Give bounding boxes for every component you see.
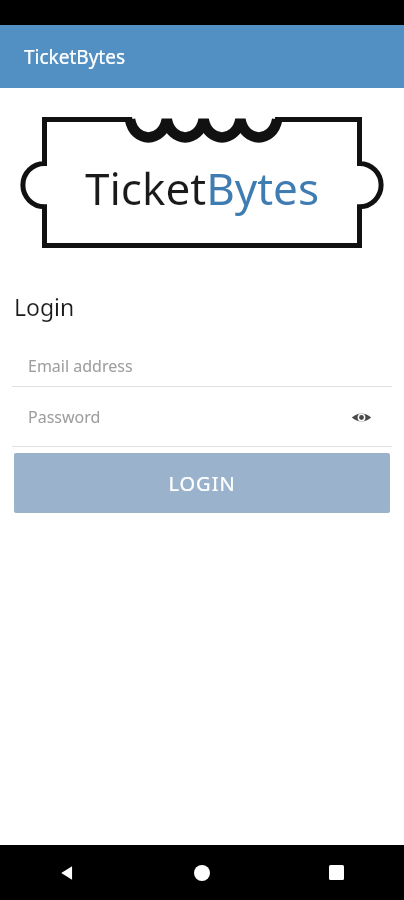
staticText: Login [14,291,75,322]
button[interactable]: Password [0,387,404,446]
button[interactable]: Home [134,845,269,900]
staticText: TicketBytes [24,44,126,70]
button[interactable]: Show password [350,406,372,428]
button[interactable]: LOGIN [14,453,390,513]
staticText: TicketBytes [85,158,319,218]
button[interactable]: Recent apps [269,845,404,900]
button[interactable]: Email address [0,346,404,386]
staticText: LOGIN [168,470,236,497]
staticText: Password [28,406,101,428]
button[interactable]: Back [0,845,134,900]
staticText: Email address [28,355,133,377]
